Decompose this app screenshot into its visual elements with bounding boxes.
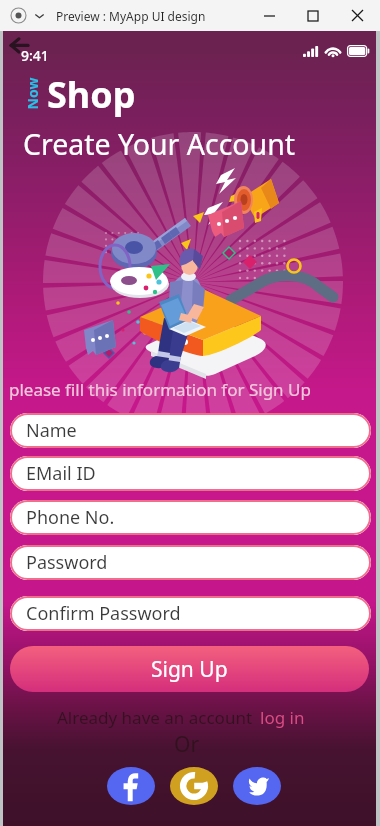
staticText: 9:41 xyxy=(21,46,49,65)
button[interactable]: Google xyxy=(170,767,218,805)
button[interactable]: log in xyxy=(260,706,305,729)
button[interactable]: Confirm Password xyxy=(10,596,371,631)
staticText: Already have an account xyxy=(57,706,253,729)
staticText: Now xyxy=(22,73,41,113)
staticText: Sign Up xyxy=(151,655,228,684)
button[interactable]: Facebook xyxy=(107,767,155,805)
button[interactable]: Password xyxy=(10,545,371,580)
staticText: Preview : MyApp UI design xyxy=(56,8,206,24)
button[interactable]: Sign Up xyxy=(10,646,369,692)
staticText: Or xyxy=(174,730,200,759)
button[interactable]: Close xyxy=(335,0,380,31)
staticText: please fill this information for Sign Up xyxy=(9,378,311,401)
staticText: log in xyxy=(260,706,305,729)
staticText: EMail ID xyxy=(26,461,96,486)
staticText: Create Your Account xyxy=(23,125,296,164)
button[interactable]: Name xyxy=(10,413,371,448)
staticText: Shop xyxy=(47,70,136,119)
staticText: Confirm Password xyxy=(26,601,181,626)
button[interactable]: Phone No. xyxy=(10,500,371,535)
button[interactable]: Twitter xyxy=(233,767,281,805)
button[interactable]: EMail ID xyxy=(10,456,371,491)
staticText: Name xyxy=(26,418,77,443)
button[interactable]: Back xyxy=(7,36,31,56)
button[interactable]: Maximize xyxy=(291,0,335,31)
button[interactable]: Minimize xyxy=(247,0,291,31)
staticText: Password xyxy=(26,550,108,575)
staticText: Phone No. xyxy=(26,505,115,530)
